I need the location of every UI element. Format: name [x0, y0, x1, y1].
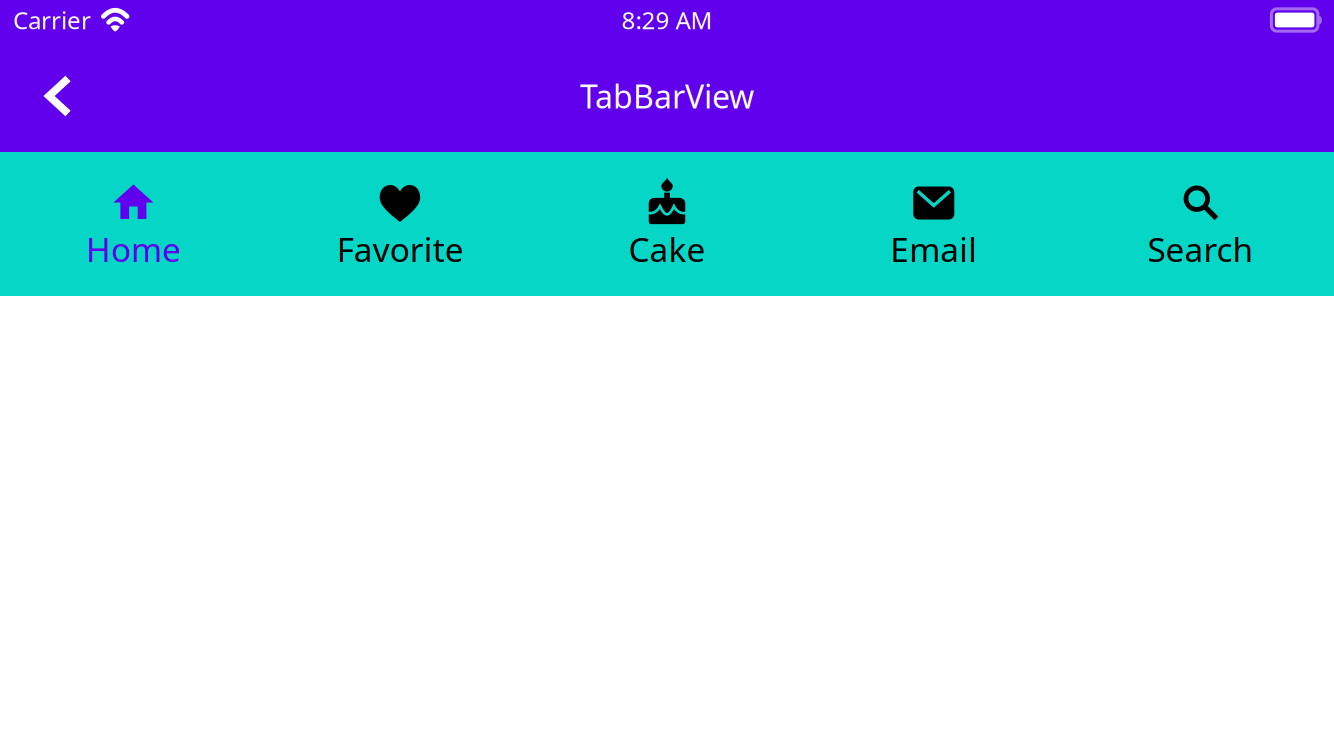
button[interactable]: Cake [534, 152, 800, 296]
button[interactable]: Email [800, 152, 1067, 296]
staticText: Search [1148, 227, 1254, 271]
staticText: TabBarView [580, 75, 754, 117]
button[interactable]: Search [1067, 152, 1334, 296]
staticText: Email [890, 227, 977, 271]
staticText: Home [86, 227, 181, 271]
staticText: 8:29 AM [621, 4, 712, 36]
button[interactable]: Favorite [267, 152, 534, 296]
staticText: Favorite [337, 227, 464, 271]
button[interactable]: Back [26, 64, 90, 128]
staticText: Cake [628, 227, 705, 271]
button[interactable]: Home [0, 152, 267, 296]
staticText: Carrier [13, 4, 91, 36]
